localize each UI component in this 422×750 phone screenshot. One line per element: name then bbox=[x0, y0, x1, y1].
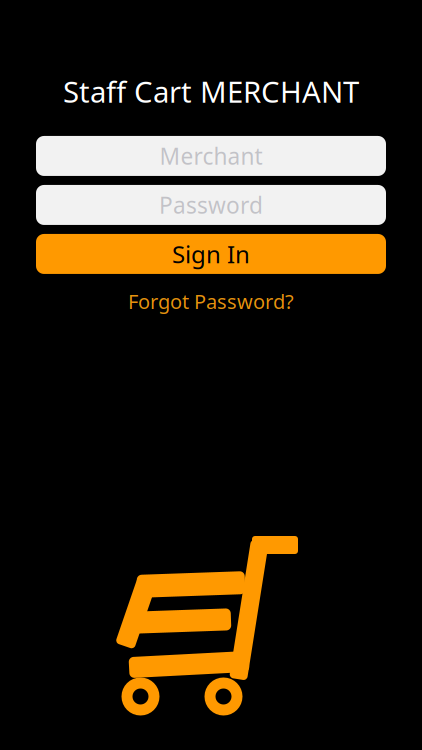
staticText: Password bbox=[159, 190, 263, 220]
button[interactable]: Merchant bbox=[36, 136, 386, 176]
staticText: Staff Cart MERCHANT bbox=[63, 72, 359, 111]
staticText: Forgot Password? bbox=[128, 288, 294, 314]
button[interactable]: Password bbox=[36, 185, 386, 225]
staticText: Merchant bbox=[159, 141, 262, 171]
staticText: Sign In bbox=[172, 238, 250, 270]
button[interactable]: Sign In bbox=[36, 234, 386, 274]
button[interactable]: Forgot Password? bbox=[36, 288, 386, 314]
